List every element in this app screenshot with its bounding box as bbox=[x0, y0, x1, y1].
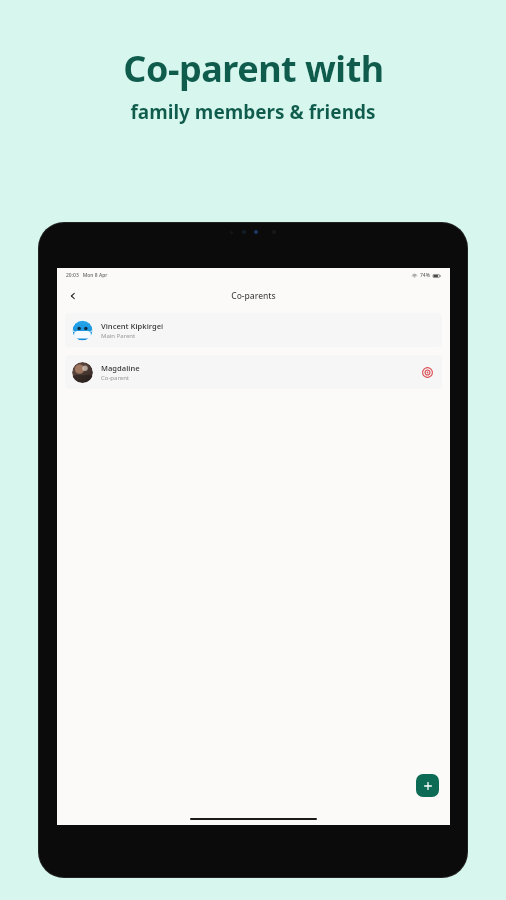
button[interactable]: Add co-parent bbox=[416, 774, 439, 797]
staticText: 74% bbox=[420, 272, 430, 279]
button[interactable]: Back bbox=[63, 286, 83, 306]
staticText: Co-parent bbox=[101, 374, 130, 382]
staticText: Main Parent bbox=[101, 332, 136, 340]
staticText: family members & friends bbox=[130, 99, 376, 125]
staticText: Co-parent with bbox=[123, 44, 384, 93]
button[interactable]: Remove co-parent bbox=[419, 364, 435, 380]
button[interactable]: Magdaline bbox=[65, 355, 442, 389]
staticText: 20:03 Mon 8 Apr bbox=[66, 272, 108, 279]
button[interactable]: Vincent Kipkirgei bbox=[65, 313, 442, 347]
staticText: Magdaline bbox=[101, 363, 140, 373]
staticText: Co-parents bbox=[231, 290, 276, 302]
staticText: Vincent Kipkirgei bbox=[101, 321, 164, 331]
